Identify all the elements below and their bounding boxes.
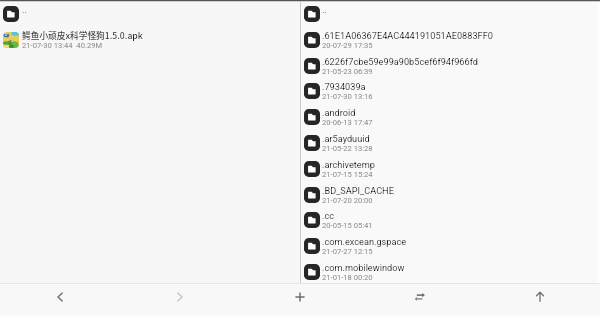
button[interactable]: Transfer (360, 284, 480, 315)
button[interactable]: Forward (120, 284, 240, 315)
staticText: 21-05-22 13:28 (322, 144, 373, 153)
button[interactable]: .61E1A06367E4AC444191051AE0883FF0 (301, 31, 600, 57)
button[interactable]: 鳄鱼小顽皮x科学怪狗1.5.0.apk (0, 31, 300, 57)
staticText: 鳄鱼小顽皮x科学怪狗1.5.0.apk (22, 29, 143, 42)
staticText: 21-07-30 13:44 40.29M (22, 41, 103, 50)
button[interactable]: .BD_SAPI_CACHE (301, 186, 600, 212)
staticText: 21-07-30 13:16 (322, 92, 373, 101)
staticText: .BD_SAPI_CACHE (322, 185, 394, 196)
staticText: 20-05-15 05:41 (322, 221, 373, 230)
button[interactable]: .. (301, 5, 600, 31)
staticText: .com.mobilewindow (322, 262, 405, 273)
button[interactable]: .. (0, 5, 300, 31)
button[interactable]: .android (301, 108, 600, 134)
button[interactable]: .archivetemp (301, 160, 600, 186)
staticText: .com.excean.gspace (322, 236, 407, 247)
button[interactable]: .com.excean.gspace (301, 237, 600, 263)
staticText: .ar5ayduuid (322, 133, 370, 144)
staticText: .61E1A06367E4AC444191051AE0883FF0 (322, 30, 493, 41)
button[interactable]: Back (0, 284, 120, 315)
staticText: .7934039a (322, 81, 366, 92)
staticText: 21-07-15 15:24 (322, 170, 373, 179)
staticText: .. (322, 4, 327, 15)
staticText: .archivetemp (322, 159, 375, 170)
staticText: 21-07-20 20:00 (322, 196, 373, 205)
staticText: 20-06-13 17:47 (322, 118, 373, 127)
staticText: .6226f7cbe59e99a90b5cef6f94f966fd (322, 56, 478, 67)
button[interactable]: .com.mobilewindow (301, 263, 600, 289)
button[interactable]: .6226f7cbe59e99a90b5cef6f94f966fd (301, 57, 600, 83)
staticText: 20-07-29 17:35 (322, 41, 373, 50)
staticText: .android (322, 107, 356, 118)
staticText: 21-05-23 06:39 (322, 67, 373, 76)
button[interactable]: Up (480, 284, 600, 315)
button[interactable]: .7934039a (301, 82, 600, 108)
staticText: 21-01-18 00:20 (322, 273, 373, 282)
staticText: 21-07-27 12:15 (322, 247, 373, 256)
button[interactable]: .ar5ayduuid (301, 134, 600, 160)
button[interactable]: New (240, 284, 360, 315)
button[interactable]: .cc (301, 211, 600, 237)
staticText: .. (22, 4, 27, 15)
staticText: .cc (322, 210, 335, 221)
